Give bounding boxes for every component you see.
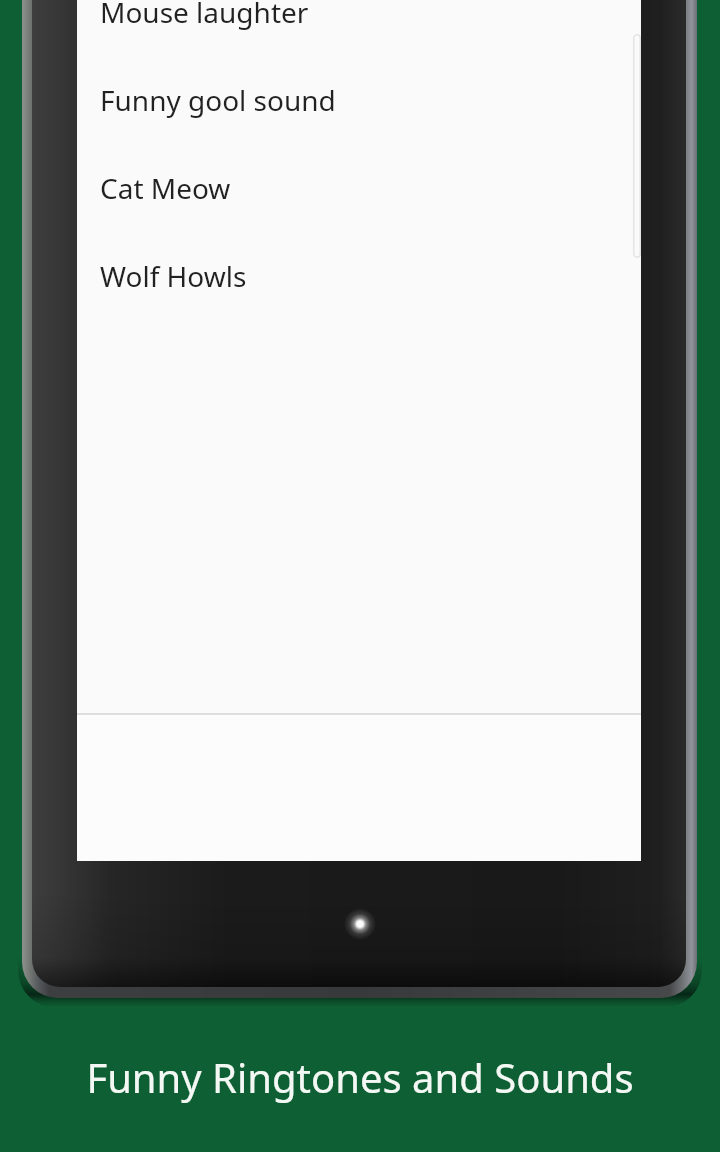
staticText: Funny Ringtones and Sounds (86, 1050, 634, 1104)
staticText: Cat Meow (100, 169, 231, 207)
staticText: Funny gool sound (100, 81, 336, 119)
button[interactable]: Wolf Howls (77, 250, 641, 338)
staticText: Wolf Howls (100, 257, 247, 295)
staticText: Mouse laughter (100, 0, 309, 31)
button[interactable]: Funny gool sound (77, 74, 641, 162)
button[interactable]: Mouse laughter (77, 0, 641, 74)
button[interactable]: Cat Meow (77, 162, 641, 250)
